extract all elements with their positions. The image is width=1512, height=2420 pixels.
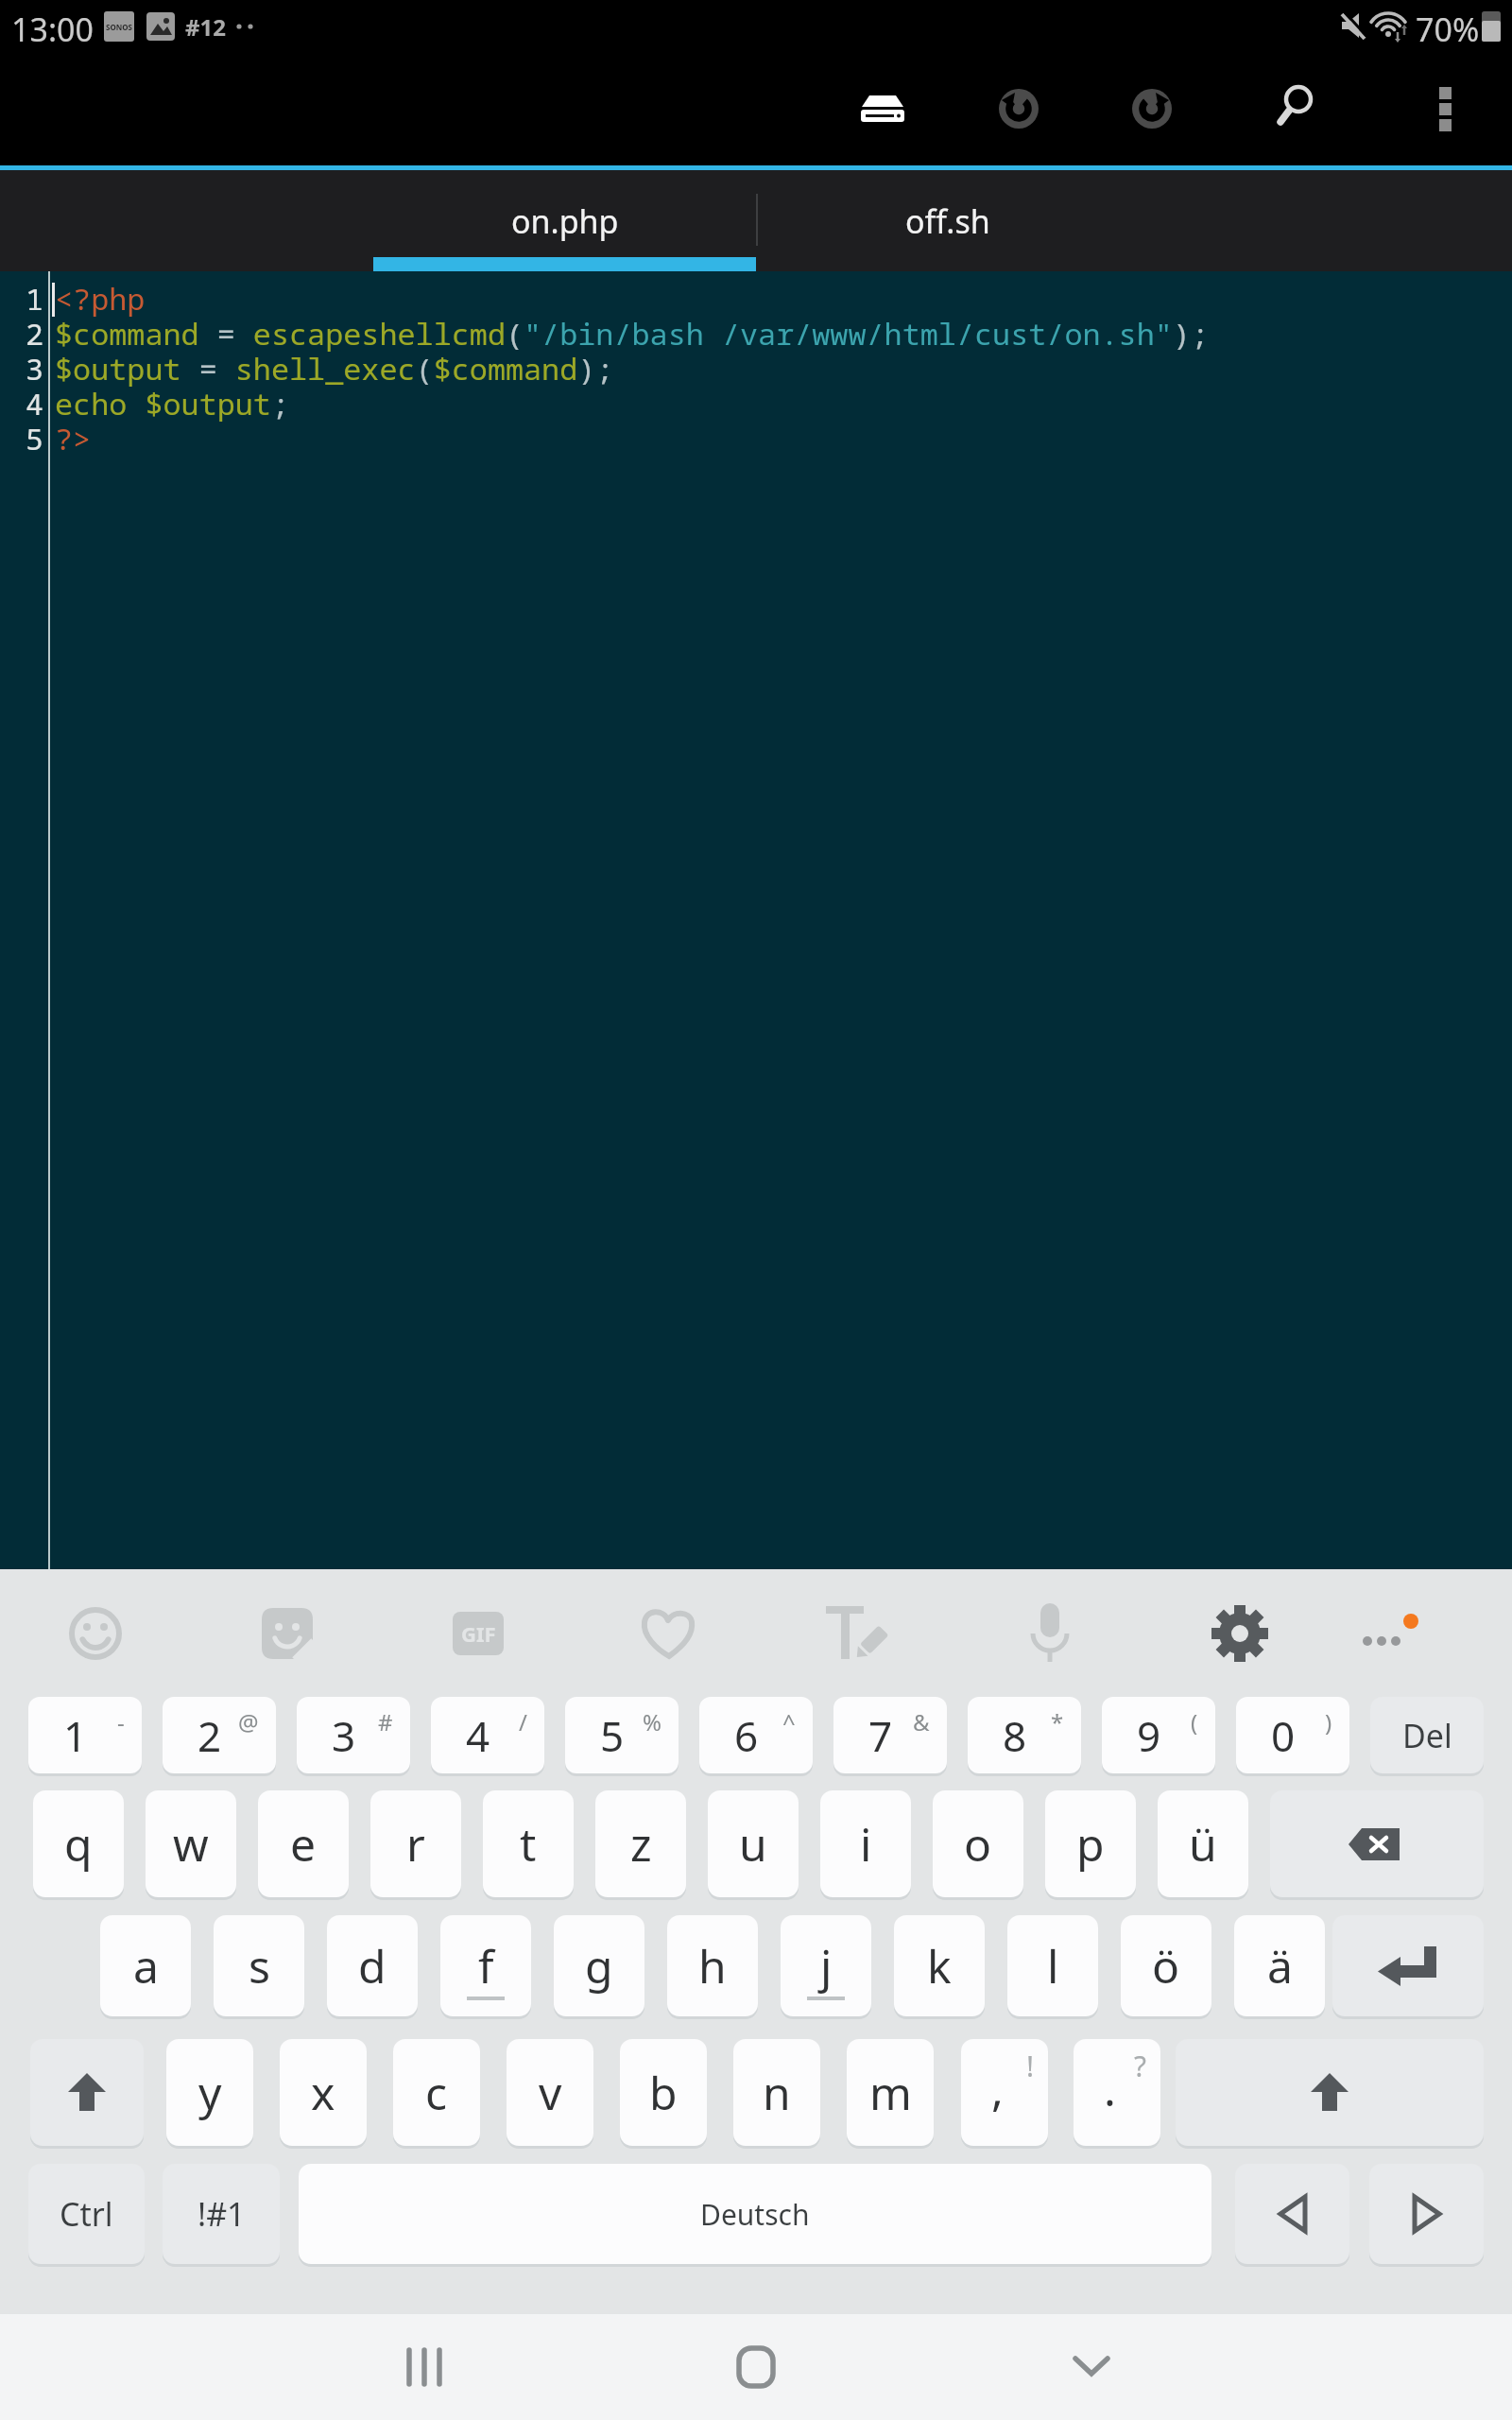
- button[interactable]: n: [733, 2039, 820, 2146]
- staticText: t: [520, 1813, 537, 1875]
- staticText: z: [630, 1813, 652, 1875]
- button[interactable]: l: [1007, 1915, 1098, 2016]
- button[interactable]: a: [100, 1915, 191, 2016]
- button[interactable]: Ctrl: [28, 2164, 145, 2264]
- staticText: .: [1104, 2058, 1116, 2119]
- staticText: p: [1076, 1813, 1105, 1875]
- button[interactable]: [1105, 61, 1199, 156]
- button[interactable]: [1176, 2039, 1484, 2146]
- button[interactable]: [1270, 1790, 1484, 1897]
- button[interactable]: [1332, 1577, 1446, 1690]
- button[interactable]: [695, 2314, 817, 2420]
- staticText: (: [1191, 1706, 1198, 1737]
- staticText: 1: [63, 1707, 88, 1764]
- staticText: i: [860, 1813, 872, 1875]
- staticText: 7: [868, 1707, 893, 1764]
- button[interactable]: q: [33, 1790, 124, 1897]
- staticText: /: [519, 1706, 527, 1737]
- button[interactable]: w: [146, 1790, 236, 1897]
- button[interactable]: 6: [699, 1697, 813, 1773]
- button[interactable]: 5: [565, 1697, 679, 1773]
- staticText: #: [378, 1706, 393, 1737]
- button[interactable]: o: [933, 1790, 1023, 1897]
- staticText: 3: [332, 1707, 356, 1764]
- button[interactable]: c: [393, 2039, 480, 2146]
- button[interactable]: [993, 1577, 1107, 1690]
- button[interactable]: k: [894, 1915, 985, 2016]
- staticText: @: [238, 1706, 259, 1737]
- button[interactable]: j: [781, 1915, 871, 2016]
- staticText: ): [1325, 1706, 1332, 1737]
- staticText: 6: [734, 1707, 759, 1764]
- button[interactable]: 0: [1236, 1697, 1349, 1773]
- button[interactable]: !#1: [163, 2164, 280, 2264]
- button[interactable]: [1405, 61, 1485, 156]
- button[interactable]: [1183, 1577, 1297, 1690]
- staticText: f: [478, 1935, 494, 1996]
- staticText: 5: [600, 1707, 625, 1764]
- button[interactable]: [971, 61, 1066, 156]
- button[interactable]: [30, 2039, 144, 2146]
- button[interactable]: [802, 1577, 916, 1690]
- button[interactable]: b: [620, 2039, 707, 2146]
- button[interactable]: g: [554, 1915, 644, 2016]
- button[interactable]: v: [507, 2039, 593, 2146]
- staticText: 9: [1137, 1707, 1161, 1764]
- button[interactable]: [1247, 61, 1342, 156]
- button[interactable]: 3: [297, 1697, 410, 1773]
- staticText: x: [311, 2062, 335, 2123]
- button[interactable]: z: [595, 1790, 686, 1897]
- staticText: ä: [1267, 1935, 1293, 1996]
- button[interactable]: GIF: [421, 1577, 535, 1690]
- button[interactable]: [835, 61, 930, 156]
- button[interactable]: [39, 1577, 152, 1690]
- button[interactable]: on.php: [373, 170, 756, 271]
- button[interactable]: .: [1074, 2039, 1160, 2146]
- button[interactable]: m: [847, 2039, 934, 2146]
- staticText: u: [739, 1813, 767, 1875]
- button[interactable]: Del: [1370, 1697, 1484, 1773]
- button[interactable]: y: [166, 2039, 253, 2146]
- staticText: ,: [991, 2058, 1004, 2119]
- button[interactable]: s: [214, 1915, 304, 2016]
- button[interactable]: [364, 2314, 487, 2420]
- staticText: v: [539, 2062, 562, 2123]
- button[interactable]: [611, 1577, 725, 1690]
- staticText: b: [649, 2062, 678, 2123]
- button[interactable]: u: [708, 1790, 799, 1897]
- button[interactable]: p: [1045, 1790, 1136, 1897]
- button[interactable]: 7: [833, 1697, 947, 1773]
- button[interactable]: e: [258, 1790, 349, 1897]
- button[interactable]: [1235, 2164, 1349, 2264]
- button[interactable]: ö: [1121, 1915, 1211, 2016]
- button[interactable]: 2: [163, 1697, 276, 1773]
- staticText: %: [643, 1706, 661, 1737]
- button[interactable]: 1: [28, 1697, 142, 1773]
- button[interactable]: [1030, 2314, 1153, 2420]
- button[interactable]: 4: [431, 1697, 544, 1773]
- staticText: ?: [1134, 2047, 1147, 2085]
- button[interactable]: d: [327, 1915, 418, 2016]
- staticText: on.php: [511, 199, 619, 243]
- button[interactable]: ,: [961, 2039, 1048, 2146]
- button[interactable]: x: [280, 2039, 367, 2146]
- staticText: 4: [466, 1707, 490, 1764]
- button[interactable]: r: [370, 1790, 461, 1897]
- button[interactable]: f: [440, 1915, 531, 2016]
- button[interactable]: off.sh: [756, 170, 1139, 271]
- staticText: g: [585, 1935, 613, 1996]
- button[interactable]: [231, 1577, 344, 1690]
- staticText: 0: [1271, 1707, 1296, 1764]
- button[interactable]: t: [483, 1790, 574, 1897]
- button[interactable]: ü: [1158, 1790, 1248, 1897]
- button[interactable]: [1369, 2164, 1484, 2264]
- button[interactable]: 8: [968, 1697, 1081, 1773]
- button[interactable]: i: [820, 1790, 911, 1897]
- staticText: Deutsch: [700, 2195, 810, 2234]
- button[interactable]: 9: [1102, 1697, 1215, 1773]
- button[interactable]: ä: [1234, 1915, 1325, 2016]
- button[interactable]: [1332, 1915, 1484, 2016]
- button[interactable]: Deutsch: [299, 2164, 1211, 2264]
- staticText: n: [763, 2062, 791, 2123]
- button[interactable]: h: [667, 1915, 758, 2016]
